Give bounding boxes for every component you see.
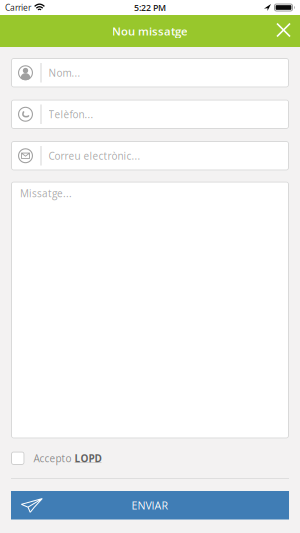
button[interactable]: Accepto LOPD — [11, 451, 24, 465]
staticText: 5:22 PM — [134, 1, 166, 13]
button[interactable]: LOPD — [74, 451, 101, 465]
button[interactable]: Missatge... — [11, 181, 289, 438]
staticText: Correu electrònic... — [48, 149, 140, 162]
staticText: Missatge... — [20, 186, 72, 200]
button[interactable]: Nom... — [11, 58, 289, 87]
staticText: Carrier — [5, 2, 31, 13]
button[interactable]: Telèfon... — [11, 99, 289, 129]
staticText: Nou missatge — [112, 23, 188, 39]
staticText: Telèfon... — [48, 107, 93, 121]
staticText: Accepto — [33, 451, 74, 465]
button[interactable]: Correu electrònic... — [11, 141, 289, 170]
staticText: LOPD — [74, 451, 101, 465]
button[interactable]: ENVIAR — [11, 491, 289, 519]
staticText: ENVIAR — [131, 498, 168, 512]
button[interactable]: Close — [277, 24, 300, 37]
staticText: Nom... — [48, 66, 80, 79]
